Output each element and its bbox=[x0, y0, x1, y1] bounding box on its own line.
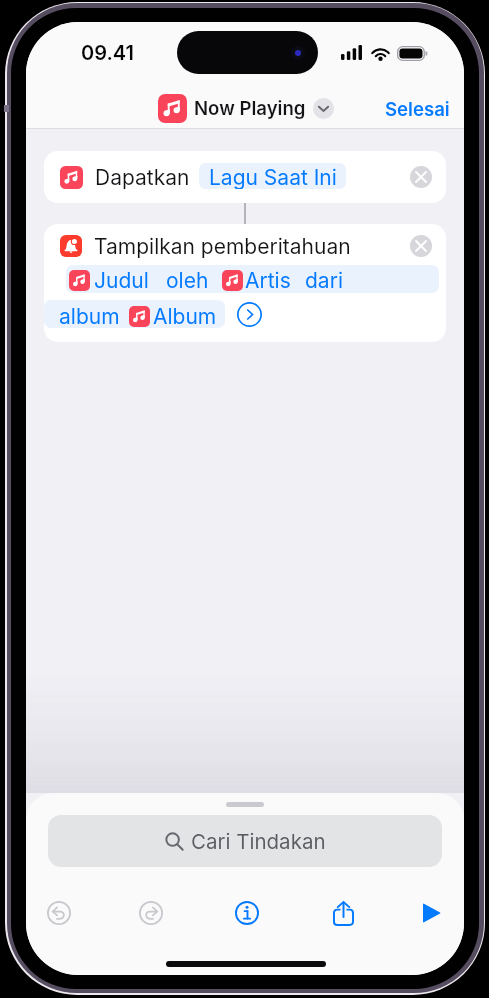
staticText: dari bbox=[305, 268, 343, 293]
button[interactable]: album bbox=[59, 302, 217, 330]
button[interactable]: Tampilkan pemberitahuan bbox=[44, 224, 446, 342]
button[interactable]: Ulangi bbox=[130, 892, 172, 934]
button[interactable]: Opsi lainnya bbox=[237, 302, 262, 327]
button[interactable]: Dapatkan bbox=[44, 151, 446, 203]
button[interactable]: Urungkan bbox=[38, 892, 80, 934]
staticText: Judul bbox=[94, 268, 149, 293]
button[interactable]: Lagu Saat Ini bbox=[199, 163, 346, 189]
staticText: Album bbox=[153, 304, 217, 329]
button[interactable]: Info bbox=[226, 892, 268, 934]
staticText: Cari Tindakan bbox=[191, 829, 326, 854]
staticText: Tampilkan pemberitahuan bbox=[94, 234, 351, 259]
staticText: album bbox=[59, 304, 120, 329]
staticText: Artis bbox=[245, 268, 291, 293]
staticText: oleh bbox=[166, 268, 209, 293]
button[interactable]: Jalankan bbox=[411, 892, 453, 934]
button[interactable]: Hapus bbox=[410, 235, 432, 257]
staticText: 09.41 bbox=[81, 41, 134, 65]
button[interactable]: Now Playing bbox=[152, 90, 340, 127]
staticText: Now Playing bbox=[194, 97, 306, 120]
button[interactable]: Selesai bbox=[378, 93, 457, 126]
staticText: Dapatkan bbox=[95, 165, 190, 190]
staticText: Lagu Saat Ini bbox=[209, 165, 337, 189]
button[interactable]: Cari Tindakan bbox=[48, 815, 442, 867]
button[interactable]: Bagikan bbox=[322, 892, 364, 934]
button[interactable]: Hapus bbox=[410, 166, 432, 188]
staticText: Selesai bbox=[385, 98, 450, 121]
button[interactable]: Judul bbox=[69, 266, 343, 294]
